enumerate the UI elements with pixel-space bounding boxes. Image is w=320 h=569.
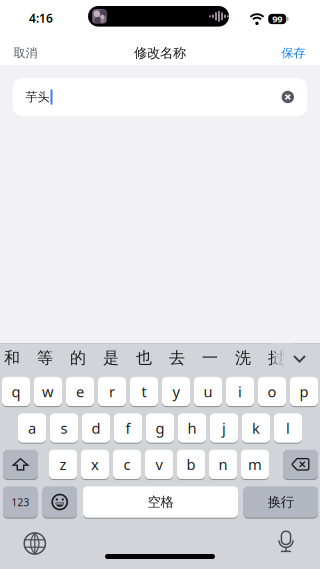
button[interactable]: 的 — [65, 343, 91, 373]
staticText: r — [109, 382, 115, 401]
staticText: 和 — [4, 348, 20, 368]
staticText: v — [155, 455, 162, 474]
staticText: 的 — [70, 348, 86, 368]
button[interactable]: d — [82, 412, 110, 444]
staticText: a — [28, 418, 36, 438]
button[interactable]: Delete — [283, 449, 318, 480]
button[interactable]: i — [226, 376, 254, 407]
staticText: x — [91, 455, 99, 474]
staticText: c — [123, 455, 130, 474]
button[interactable]: h — [178, 412, 206, 444]
button[interactable]: y — [162, 376, 190, 407]
staticText: 去 — [169, 348, 185, 368]
staticText: y — [172, 382, 179, 401]
button[interactable]: Dictate — [273, 528, 299, 554]
button[interactable]: 保存 — [270, 42, 316, 64]
button[interactable]: e — [66, 376, 94, 407]
button[interactable]: r — [98, 376, 126, 407]
staticText: l — [286, 418, 290, 438]
button[interactable]: v — [145, 449, 173, 480]
staticText: 保存 — [281, 46, 305, 60]
staticText: k — [252, 418, 260, 438]
button[interactable]: Expand candidates — [287, 347, 311, 371]
button[interactable]: k — [242, 412, 270, 444]
button[interactable]: 取消 — [2, 42, 48, 64]
button[interactable]: 等 — [32, 343, 58, 373]
button[interactable]: 换行 — [243, 485, 318, 519]
staticText: 是 — [103, 348, 119, 368]
button[interactable]: z — [49, 449, 77, 480]
staticText: i — [238, 382, 242, 401]
button[interactable]: t — [130, 376, 158, 407]
staticText: o — [267, 382, 276, 401]
staticText: w — [42, 382, 54, 401]
button[interactable]: p — [290, 376, 318, 407]
staticText: 123 — [11, 495, 29, 509]
button[interactable]: u — [194, 376, 222, 407]
staticText: j — [222, 418, 226, 438]
button[interactable]: o — [258, 376, 286, 407]
staticText: 洗 — [235, 348, 251, 368]
staticText: 修改名称 — [134, 45, 186, 61]
staticText: 芋头 — [25, 90, 49, 104]
staticText: 99 — [272, 13, 282, 25]
staticText: d — [91, 418, 100, 438]
button[interactable]: c — [113, 449, 141, 480]
button[interactable]: 挝 — [263, 343, 289, 373]
staticText: 取消 — [13, 46, 37, 60]
button[interactable]: j — [210, 412, 238, 444]
button[interactable]: x — [81, 449, 109, 480]
staticText: p — [299, 382, 308, 401]
button[interactable]: 空格 — [83, 485, 238, 519]
staticText: 空格 — [147, 494, 173, 510]
button[interactable]: b — [177, 449, 205, 480]
button[interactable]: 是 — [98, 343, 124, 373]
button[interactable]: f — [114, 412, 142, 444]
button[interactable]: 也 — [131, 343, 157, 373]
button[interactable]: l — [274, 412, 302, 444]
staticText: 挝 — [268, 348, 284, 368]
staticText: q — [11, 382, 20, 401]
button[interactable]: Shift — [3, 449, 38, 480]
button[interactable]: 一 — [197, 343, 223, 373]
staticText: n — [218, 455, 227, 474]
button[interactable]: m — [241, 449, 269, 480]
staticText: 等 — [37, 348, 53, 368]
button[interactable]: s — [50, 412, 78, 444]
button[interactable]: 和 — [0, 343, 25, 373]
button[interactable]: q — [2, 376, 30, 407]
button[interactable]: Clear text — [278, 87, 298, 107]
button[interactable]: 去 — [164, 343, 190, 373]
staticText: h — [187, 418, 196, 438]
staticText: b — [186, 455, 195, 474]
staticText: 也 — [136, 348, 152, 368]
staticText: 4:16 — [29, 10, 53, 26]
button[interactable]: 洗 — [230, 343, 256, 373]
button[interactable]: Next keyboard — [20, 528, 50, 558]
staticText: u — [203, 382, 212, 401]
staticText: m — [248, 455, 262, 474]
staticText: g — [155, 418, 164, 438]
button[interactable]: 123 — [3, 485, 37, 519]
staticText: z — [59, 455, 66, 474]
button[interactable]: Emoji — [42, 485, 77, 519]
button[interactable]: w — [34, 376, 62, 407]
button[interactable]: g — [146, 412, 174, 444]
staticText: 换行 — [268, 494, 294, 510]
staticText: 一 — [202, 348, 218, 368]
staticText: t — [141, 382, 146, 401]
staticText: e — [76, 382, 84, 401]
button[interactable]: a — [18, 412, 46, 444]
button[interactable]: n — [209, 449, 237, 480]
staticText: f — [125, 418, 130, 438]
staticText: s — [60, 418, 67, 438]
